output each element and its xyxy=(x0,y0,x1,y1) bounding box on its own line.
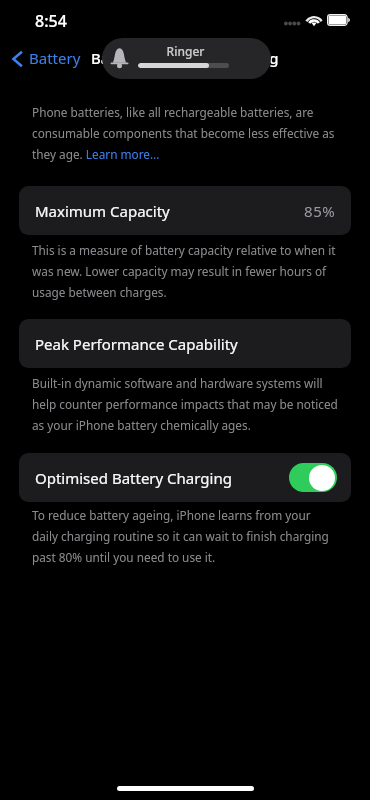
staticText: Phone batteries, like all rechargeable b… xyxy=(32,104,338,162)
staticText: Maximum Capacity xyxy=(35,201,170,221)
staticText: Battery Health & Charging xyxy=(91,48,279,68)
staticText: Ringer xyxy=(140,43,231,59)
button[interactable]: Peak Performance Capability xyxy=(19,319,351,368)
staticText: Built-in dynamic software and hardware s… xyxy=(32,375,338,433)
button[interactable]: Optimised Battery Charging xyxy=(19,453,351,502)
staticText: To reduce battery ageing, iPhone learns … xyxy=(32,507,338,565)
staticText: Battery xyxy=(29,48,81,68)
button[interactable]: Maximum Capacity xyxy=(19,186,351,235)
staticText: 85% xyxy=(304,201,336,221)
staticText: Optimised Battery Charging xyxy=(35,468,232,488)
button[interactable]: Learn more xyxy=(86,146,160,163)
button[interactable]: Battery xyxy=(8,44,87,72)
button[interactable]: Optimised Battery Charging, on xyxy=(289,463,337,492)
staticText: This is a measure of battery capacity re… xyxy=(32,242,338,300)
button[interactable]: Ringer volume xyxy=(102,38,271,79)
staticText: 8:54 xyxy=(35,10,67,32)
staticText: Peak Performance Capability xyxy=(35,334,238,354)
